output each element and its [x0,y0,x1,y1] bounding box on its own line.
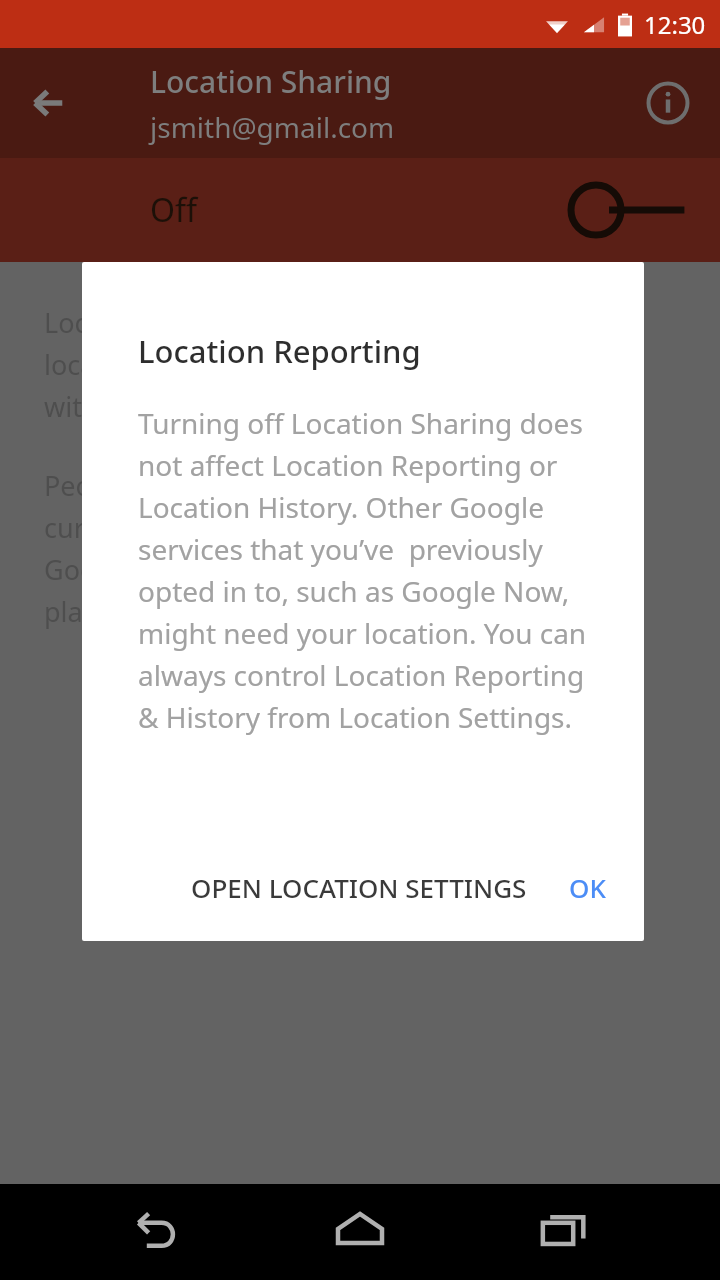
staticText: Location Reporting [138,330,421,372]
button[interactable]: OPEN LOCATION SETTINGS [177,856,541,919]
staticText: Location Sharing lets you share your rea… [44,304,627,425]
button[interactable]: Back [18,73,78,133]
staticText: Turning off Location Sharing does not af… [138,404,596,736]
button[interactable]: Location sharing toggle [570,175,700,245]
button[interactable]: OK [555,856,620,919]
staticText: jsmith@gmail.com [150,108,395,146]
staticText: Location Sharing [150,61,392,102]
button[interactable]: Back [108,1184,204,1280]
staticText: OK [569,870,606,905]
button[interactable]: Recent apps [516,1184,612,1280]
staticText: Off [150,188,198,232]
staticText: 12:30 [644,8,706,41]
button[interactable]: Info [638,73,698,133]
staticText: OPEN LOCATION SETTINGS [191,870,527,905]
button[interactable]: Home [312,1184,408,1280]
staticText: People you share with can see your curre… [44,467,601,630]
